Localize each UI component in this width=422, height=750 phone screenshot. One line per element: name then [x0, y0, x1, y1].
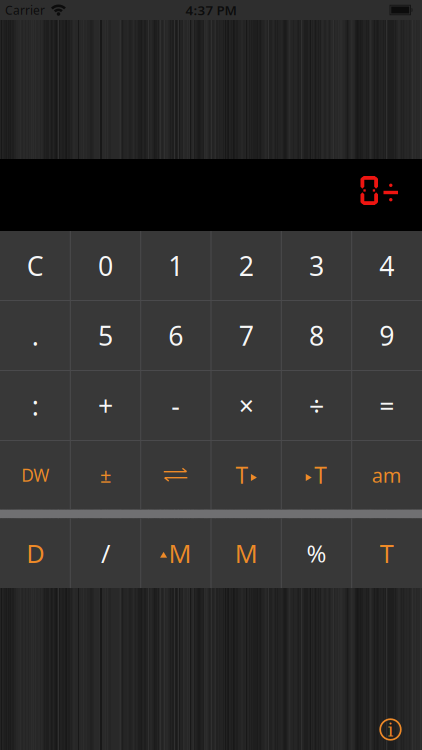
staticText: C: [27, 248, 44, 283]
staticText: -: [171, 388, 180, 423]
staticText: 7: [239, 318, 254, 353]
staticText: +: [98, 388, 113, 423]
staticText: 4:37 PM: [185, 1, 236, 19]
staticText: 1: [168, 248, 183, 283]
staticText: 3: [309, 248, 324, 283]
button[interactable]: am: [352, 440, 422, 509]
button[interactable]: 5: [70, 300, 141, 370]
button[interactable]: Swap: [141, 440, 211, 509]
button[interactable]: T: [352, 518, 422, 588]
button[interactable]: /: [70, 518, 141, 588]
staticText: Carrier: [5, 2, 45, 18]
button[interactable]: C: [0, 231, 70, 300]
button[interactable]: M up: [141, 518, 211, 588]
button[interactable]: 8: [281, 300, 352, 370]
staticText: 2: [239, 248, 254, 283]
staticText: ÷: [309, 388, 324, 423]
staticText: am: [372, 462, 402, 488]
button[interactable]: Info: [379, 718, 401, 740]
staticText: D: [26, 536, 44, 570]
staticText: ±: [100, 462, 111, 488]
staticText: 9: [379, 318, 394, 353]
button[interactable]: D: [0, 518, 70, 588]
button[interactable]: To T: [211, 440, 281, 509]
button[interactable]: =: [352, 370, 422, 440]
button[interactable]: 4: [352, 231, 422, 300]
button[interactable]: ±: [70, 440, 141, 509]
button[interactable]: DW: [0, 440, 70, 509]
button[interactable]: M: [211, 518, 281, 588]
button[interactable]: From T: [281, 440, 352, 509]
button[interactable]: 6: [141, 300, 211, 370]
staticText: .: [32, 318, 39, 353]
staticText: T: [235, 460, 248, 490]
staticText: /: [101, 536, 110, 570]
button[interactable]: ×: [211, 370, 281, 440]
button[interactable]: .: [0, 300, 70, 370]
button[interactable]: %: [281, 518, 352, 588]
staticText: 5: [98, 318, 113, 353]
staticText: 6: [168, 318, 183, 353]
button[interactable]: 2: [211, 231, 281, 300]
staticText: M: [169, 536, 192, 570]
staticText: 8: [309, 318, 324, 353]
staticText: 4: [379, 248, 394, 283]
button[interactable]: ÷: [281, 370, 352, 440]
staticText: DW: [21, 463, 49, 486]
staticText: T: [380, 536, 394, 570]
button[interactable]: -: [141, 370, 211, 440]
button[interactable]: :: [0, 370, 70, 440]
staticText: T: [314, 460, 327, 490]
button[interactable]: 3: [281, 231, 352, 300]
staticText: i: [387, 719, 393, 741]
staticText: =: [379, 388, 394, 423]
staticText: %: [306, 537, 326, 569]
button[interactable]: 7: [211, 300, 281, 370]
button[interactable]: 9: [352, 300, 422, 370]
button[interactable]: 1: [141, 231, 211, 300]
staticText: M: [235, 536, 258, 570]
staticText: :: [32, 388, 39, 423]
staticText: ×: [239, 388, 254, 423]
staticText: 0: [98, 248, 113, 283]
button[interactable]: 0: [70, 231, 141, 300]
button[interactable]: +: [70, 370, 141, 440]
